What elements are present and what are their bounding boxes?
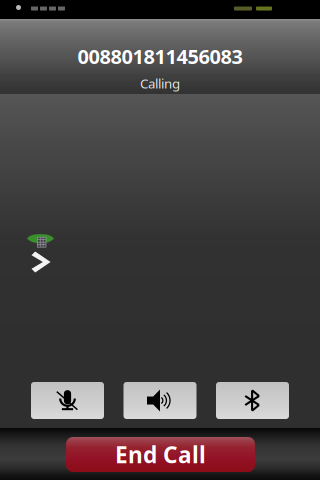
button[interactable]: End Call	[66, 437, 255, 472]
button[interactable]: Show dialpad	[24, 231, 58, 273]
button[interactable]: Mute	[31, 382, 104, 419]
staticText: 008801811456083	[77, 43, 242, 70]
button[interactable]: Speaker	[123, 382, 196, 419]
button[interactable]: Bluetooth	[216, 382, 289, 419]
staticText: End Call	[115, 439, 206, 469]
staticText: Calling	[140, 75, 180, 92]
